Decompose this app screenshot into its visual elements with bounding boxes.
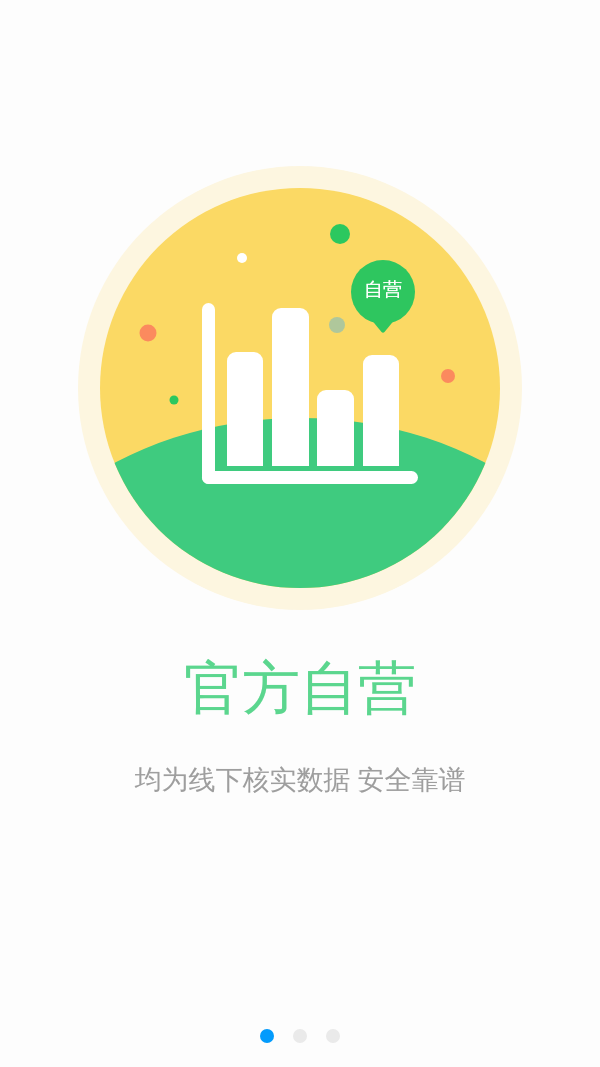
button[interactable]: Page 2 <box>293 1029 307 1043</box>
staticText: 均为线下核实数据 安全靠谱 <box>0 760 600 797</box>
button[interactable]: Page 3 <box>326 1029 340 1043</box>
staticText: 官方自营 <box>0 652 600 725</box>
staticText: 自营 <box>359 278 407 302</box>
button[interactable]: Page 1 <box>260 1029 274 1043</box>
